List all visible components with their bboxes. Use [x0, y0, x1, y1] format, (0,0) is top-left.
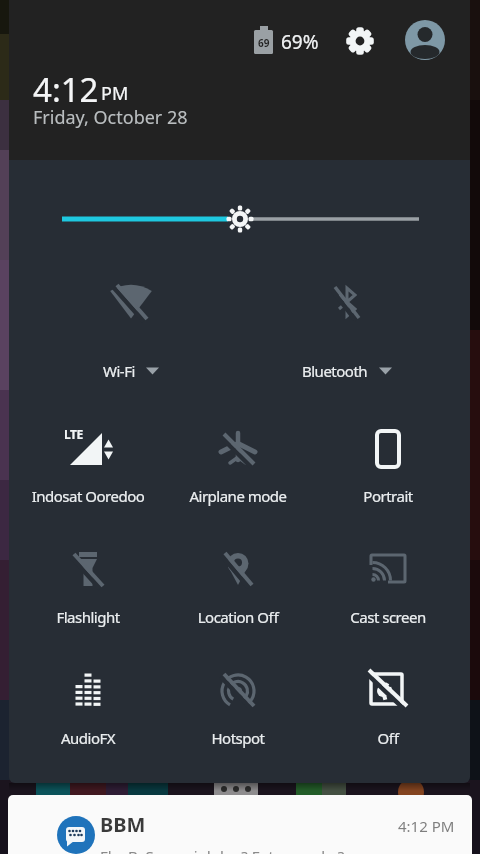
staticText: Friday, October 28 — [33, 105, 188, 130]
staticText: Hotspot — [148, 728, 328, 748]
button[interactable] — [316, 535, 460, 632]
button[interactable] — [16, 535, 160, 632]
button[interactable] — [16, 414, 160, 511]
button[interactable] — [316, 655, 460, 753]
button[interactable] — [166, 535, 310, 632]
button[interactable] — [405, 20, 445, 60]
staticText: Wi-Fi — [103, 361, 135, 381]
staticText: Cast screen — [298, 607, 470, 627]
button[interactable]: BBM — [8, 795, 472, 854]
staticText: Indosat Ooredoo — [9, 486, 178, 506]
button[interactable] — [166, 414, 310, 511]
button[interactable] — [343, 24, 377, 58]
staticText: Bluetooth — [302, 361, 368, 381]
staticText: Portrait — [298, 486, 470, 506]
staticText: BBM — [100, 811, 146, 838]
button[interactable]: 69 — [252, 25, 276, 55]
staticText: Fla, B, Sampai doloe? Fotonya oke? — [100, 846, 345, 854]
staticText: 4:12 PM — [398, 816, 455, 836]
staticText: Flashlight — [9, 607, 178, 627]
staticText: 4:12 — [33, 67, 99, 112]
staticText: LTE — [64, 426, 83, 442]
button[interactable] — [275, 268, 419, 385]
button[interactable] — [16, 655, 160, 753]
staticText: 69% — [281, 29, 319, 55]
button[interactable] — [166, 655, 310, 753]
staticText: 69 — [258, 36, 270, 50]
button[interactable] — [59, 268, 203, 385]
staticText: PM — [101, 81, 129, 106]
staticText: AudioFX — [9, 728, 178, 748]
staticText: Airplane mode — [148, 486, 328, 506]
button[interactable] — [316, 415, 460, 511]
staticText: Location Off — [148, 607, 328, 627]
staticText: Off — [298, 728, 470, 748]
